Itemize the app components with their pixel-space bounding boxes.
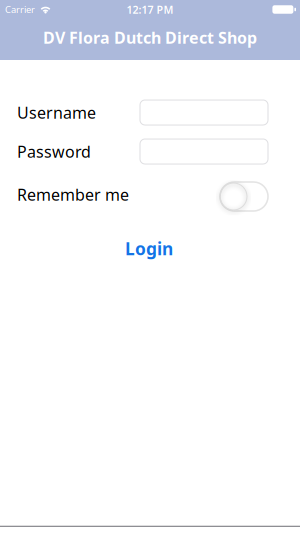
staticText: Carrier: [5, 3, 35, 16]
staticText: Login: [125, 237, 173, 260]
button[interactable]: Username: [140, 100, 268, 125]
button[interactable]: Login: [126, 237, 174, 260]
staticText: Username: [17, 102, 96, 123]
staticText: DV Flora Dutch Direct Shop: [43, 27, 257, 48]
staticText: Remember me: [17, 184, 129, 205]
button[interactable]: Password: [140, 139, 268, 164]
staticText: 12:17 PM: [126, 2, 173, 17]
button[interactable]: Remember me: [220, 182, 268, 211]
staticText: Password: [17, 141, 91, 162]
